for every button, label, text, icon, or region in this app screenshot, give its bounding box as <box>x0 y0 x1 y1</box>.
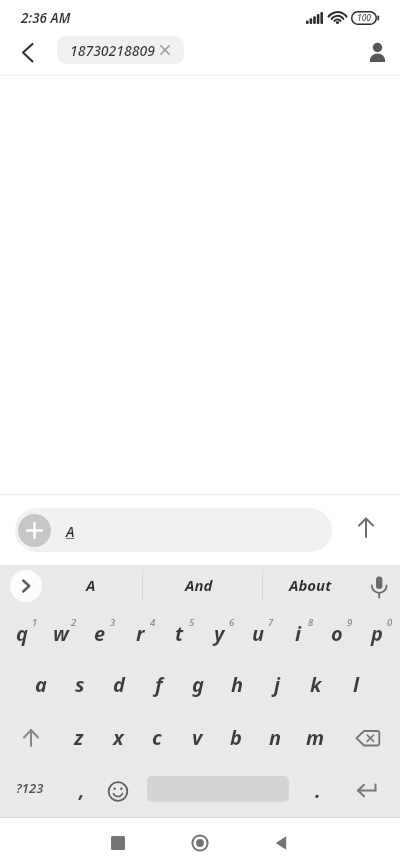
staticText: A <box>86 575 96 595</box>
staticText: 0 <box>387 616 393 629</box>
button[interactable]: o <box>317 614 357 652</box>
staticText: i <box>295 620 301 647</box>
staticText: A <box>66 522 75 541</box>
staticText: o <box>331 620 343 647</box>
staticText: , <box>79 776 85 803</box>
button[interactable]: ?123 <box>4 771 56 805</box>
button[interactable]: d <box>99 665 139 703</box>
staticText: x <box>113 724 124 751</box>
staticText: y <box>214 620 225 647</box>
staticText: 7 <box>268 616 274 629</box>
button[interactable] <box>10 38 40 68</box>
staticText: t <box>175 620 184 647</box>
staticText: k <box>310 671 322 698</box>
button[interactable]: i <box>278 614 318 652</box>
staticText: 2:36 AM <box>21 9 71 27</box>
button[interactable] <box>186 829 214 857</box>
staticText: 8 <box>308 616 314 629</box>
button[interactable]: q <box>2 614 42 652</box>
staticText: About <box>289 575 332 595</box>
button[interactable]: h <box>217 665 257 703</box>
button[interactable]: t <box>159 614 199 652</box>
staticText: l <box>353 671 359 698</box>
button[interactable] <box>351 513 381 543</box>
staticText: 2 <box>71 616 77 629</box>
button[interactable]: l <box>336 665 376 703</box>
staticText: q <box>16 620 28 647</box>
staticText: s <box>75 671 85 698</box>
staticText: w <box>53 620 69 647</box>
staticText: j <box>274 671 280 698</box>
staticText: 18730218809 <box>70 41 155 60</box>
button[interactable]: e <box>80 614 120 652</box>
button[interactable]: y <box>199 614 239 652</box>
staticText: a <box>35 671 47 698</box>
staticText: d <box>113 671 125 698</box>
button[interactable]: b <box>216 718 256 756</box>
button[interactable] <box>104 829 132 857</box>
staticText: . <box>315 777 321 804</box>
button[interactable] <box>351 722 385 754</box>
button[interactable]: A <box>15 508 332 552</box>
staticText: 1 <box>32 616 38 629</box>
button[interactable]: . <box>303 773 333 807</box>
button[interactable] <box>366 572 392 600</box>
staticText: 6 <box>229 616 235 629</box>
button[interactable]: u <box>238 614 278 652</box>
button[interactable] <box>10 570 42 602</box>
staticText: u <box>252 620 265 647</box>
staticText: z <box>74 724 84 751</box>
staticText: c <box>152 724 162 751</box>
staticText: h <box>231 671 244 698</box>
staticText: g <box>192 671 204 698</box>
button[interactable]: j <box>257 665 297 703</box>
button[interactable]: f <box>139 665 179 703</box>
staticText: ?123 <box>16 779 44 797</box>
staticText: e <box>94 620 106 647</box>
button[interactable]: v <box>177 718 217 756</box>
button[interactable]: c <box>137 718 177 756</box>
button[interactable]: k <box>296 665 336 703</box>
staticText: m <box>306 724 325 751</box>
staticText: 3 <box>110 616 116 629</box>
staticText: 4 <box>150 616 156 629</box>
button[interactable]: s <box>60 665 100 703</box>
staticText: n <box>269 724 282 751</box>
button[interactable]: x <box>98 718 138 756</box>
button[interactable]: And <box>149 565 249 605</box>
staticText: b <box>230 724 242 751</box>
button[interactable] <box>16 723 46 753</box>
button[interactable]: w <box>41 614 81 652</box>
staticText: And <box>185 575 213 595</box>
button[interactable]: 18730218809 <box>57 36 184 64</box>
button[interactable]: r <box>120 614 160 652</box>
button[interactable] <box>351 776 385 806</box>
staticText: r <box>136 620 145 647</box>
button[interactable]: a <box>21 665 61 703</box>
button[interactable] <box>267 829 295 857</box>
staticText: 9 <box>347 616 353 629</box>
staticText: 100 <box>357 12 372 24</box>
staticText: v <box>192 724 203 751</box>
button[interactable]: About <box>265 565 355 605</box>
button[interactable]: A <box>51 565 131 605</box>
button[interactable] <box>362 38 392 68</box>
staticText: p <box>371 620 383 647</box>
button[interactable]: , <box>67 772 97 806</box>
button[interactable]: n <box>255 718 295 756</box>
button[interactable]: z <box>59 718 99 756</box>
staticText: 5 <box>189 616 195 629</box>
button[interactable]: g <box>178 665 218 703</box>
button[interactable]: p <box>357 614 397 652</box>
button[interactable]: m <box>295 718 335 756</box>
staticText: f <box>155 671 163 698</box>
button[interactable] <box>104 777 132 806</box>
